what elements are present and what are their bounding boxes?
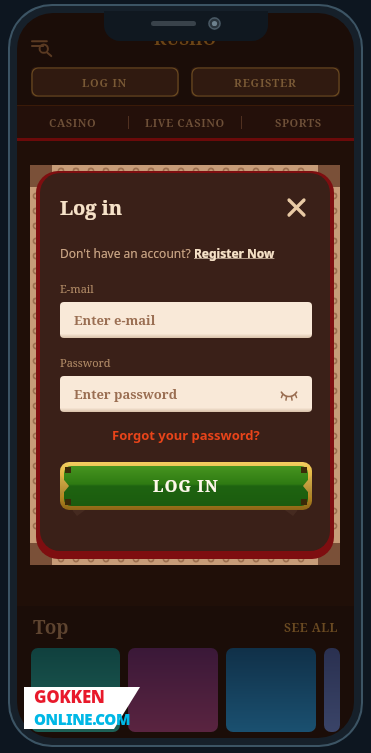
staticText: Forgot your password?	[112, 426, 260, 444]
button[interactable]: Show password	[278, 383, 300, 405]
staticText: KUSIIO	[154, 27, 217, 50]
button[interactable]: Enter e-mail	[60, 302, 312, 338]
staticText: LIVE CASINO	[145, 115, 225, 130]
button[interactable]: Forgot your password?	[112, 426, 260, 444]
staticText: Enter e-mail	[74, 311, 156, 329]
staticText: LOG IN	[82, 75, 128, 90]
staticText: E-mail	[60, 281, 94, 296]
button[interactable]: LOG IN	[31, 67, 179, 97]
staticText: GOKKEN	[34, 685, 105, 708]
button[interactable]: Register Now	[194, 245, 275, 261]
button[interactable]: Close	[280, 191, 312, 223]
button[interactable]	[31, 648, 120, 732]
button[interactable]: LIVE CASINO	[129, 106, 241, 138]
button[interactable]: SEE ALL	[284, 619, 338, 635]
staticText: Top	[33, 614, 69, 640]
staticText: Log in	[60, 194, 123, 221]
button[interactable]: LOG IN	[60, 462, 312, 510]
staticText: REGISTER	[234, 75, 297, 90]
button[interactable]	[324, 648, 340, 732]
staticText: ONLINE.COM	[34, 709, 131, 729]
staticText: Register Now	[194, 245, 275, 261]
staticText: CASINO	[49, 115, 97, 130]
staticText: Don't have an account?	[60, 245, 194, 261]
staticText: Enter password	[74, 385, 178, 403]
staticText: Password	[60, 355, 111, 370]
staticText: SEE ALL	[284, 619, 338, 635]
button[interactable]: REGISTER	[191, 67, 340, 97]
staticText: LOG IN	[153, 475, 219, 497]
button[interactable]: SPORTS	[242, 106, 354, 138]
staticText: SPORTS	[275, 115, 322, 130]
button[interactable]: Enter password	[60, 376, 312, 412]
button[interactable]: CASINO	[17, 106, 128, 138]
button[interactable]: Menu	[31, 35, 53, 57]
button[interactable]	[128, 648, 218, 732]
button[interactable]	[226, 648, 316, 732]
